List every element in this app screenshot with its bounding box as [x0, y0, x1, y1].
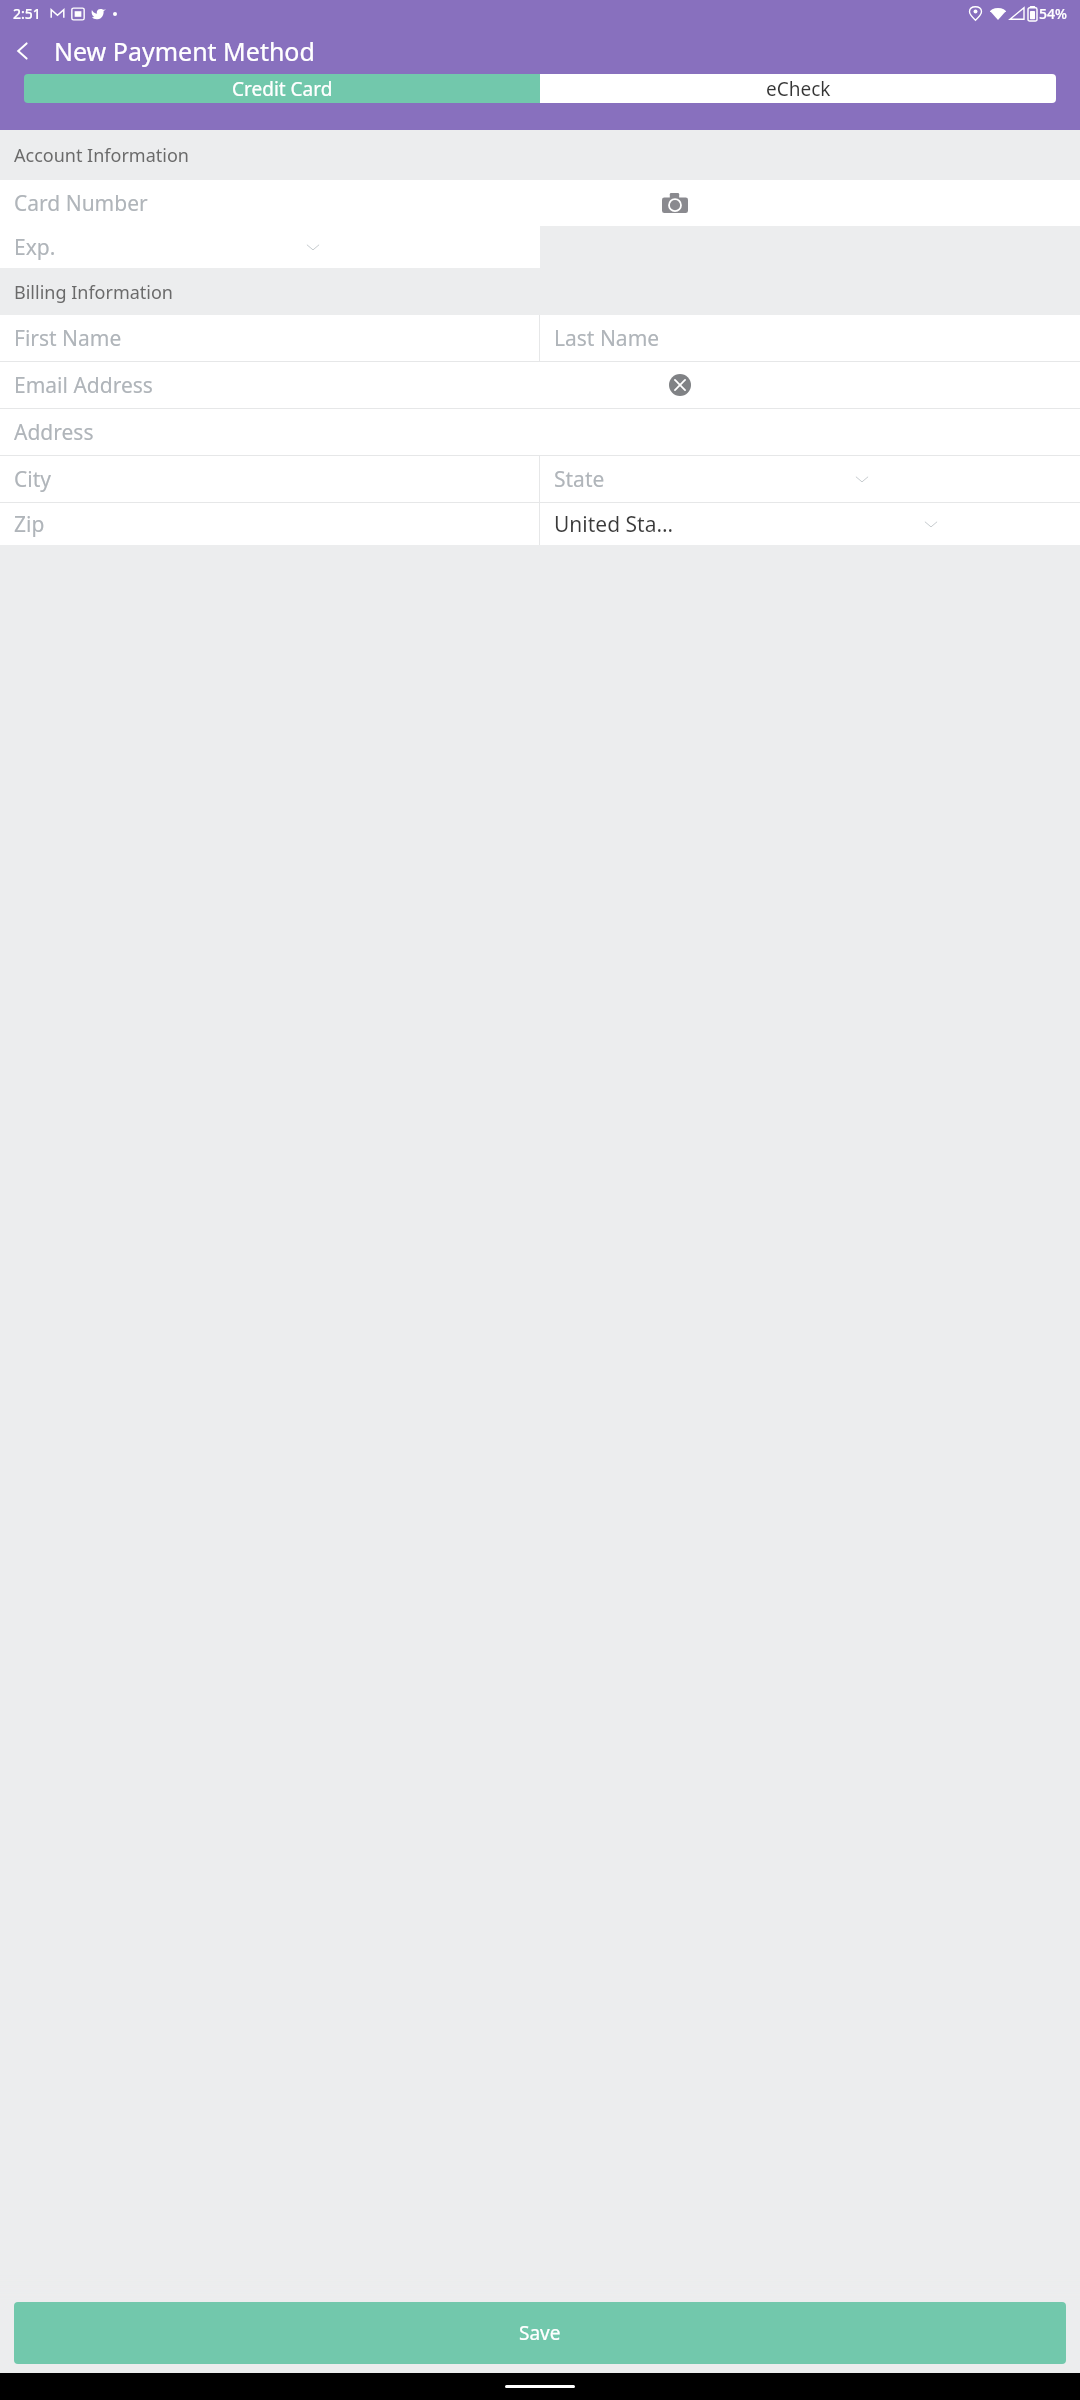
staticText: Zip — [14, 510, 45, 539]
button[interactable]: Address — [0, 409, 1080, 455]
button[interactable]: Scan card — [660, 188, 690, 218]
staticText: Email Address — [14, 371, 153, 400]
button[interactable]: First Name — [0, 315, 539, 361]
staticText: Save — [519, 2320, 561, 2346]
button[interactable]: Exp. — [0, 226, 540, 268]
staticText: eCheck — [766, 76, 831, 102]
staticText: State — [554, 465, 605, 494]
staticText: New Payment Method — [54, 34, 315, 68]
button[interactable]: Credit Card — [24, 74, 540, 103]
other: Open dropdown — [305, 239, 321, 255]
staticText: Credit Card — [232, 76, 333, 102]
staticText: Account Information — [14, 143, 189, 168]
staticText: Last Name — [554, 324, 660, 353]
button[interactable]: eCheck — [540, 74, 1056, 103]
button[interactable]: City — [0, 456, 539, 502]
staticText: United Sta… — [554, 510, 674, 539]
button[interactable]: United Sta… — [540, 503, 1080, 545]
button[interactable]: Back — [0, 28, 46, 74]
staticText: 54% — [1039, 4, 1067, 23]
button[interactable]: State — [540, 456, 1080, 502]
staticText: City — [14, 465, 51, 494]
staticText: Billing Information — [14, 280, 173, 305]
staticText: Exp. — [14, 233, 56, 262]
other: Open dropdown — [923, 516, 939, 532]
button[interactable]: Last Name — [540, 315, 1080, 361]
staticText: Card Number — [14, 189, 148, 218]
button[interactable]: Clear — [665, 370, 695, 400]
staticText: First Name — [14, 324, 122, 353]
staticText: Address — [14, 418, 94, 447]
button[interactable]: Save — [14, 2302, 1066, 2364]
button[interactable]: Email Address — [0, 362, 1080, 408]
staticText: 2:51 — [13, 4, 41, 23]
button[interactable]: Card Number — [0, 180, 1080, 226]
other: Open dropdown — [854, 471, 870, 487]
button[interactable]: Zip — [0, 503, 539, 545]
